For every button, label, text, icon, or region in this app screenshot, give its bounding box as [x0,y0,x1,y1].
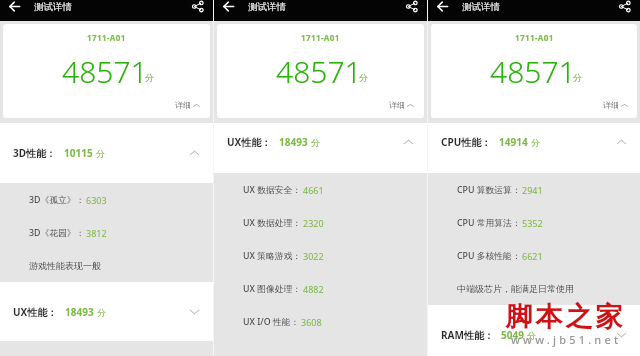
button[interactable]: 3D《花园》： [29,216,213,249]
staticText: 3608 [301,316,322,328]
button[interactable]: 1711-A01 [3,24,210,118]
staticText: 3D《花园》： [29,227,85,239]
button[interactable]: Back [9,1,20,12]
staticText: 详细 [389,100,405,110]
staticText: 1711-A01 [515,32,554,43]
button[interactable]: Back [437,1,448,12]
staticText: 5049 [501,328,524,342]
staticText: 2941 [522,184,543,196]
staticText: CPU 算数运算： [457,184,521,196]
staticText: 游戏性能表现一般 [29,260,101,271]
button[interactable]: UX性能： [0,282,213,341]
staticText: 5352 [522,217,543,229]
staticText: 详细 [603,100,619,110]
button[interactable]: 详细 [175,100,200,110]
staticText: RAM性能： [441,328,494,342]
button[interactable]: 3D《孤立》： [29,183,213,216]
staticText: 分 [573,72,582,83]
staticText: 6303 [86,194,107,206]
staticText: 4882 [303,283,324,295]
staticText: 48571 [490,51,576,92]
button[interactable]: UX性能： [214,123,427,173]
staticText: UX 数据安全： [243,184,302,196]
button[interactable]: Share [406,1,417,12]
button[interactable]: UX 策略游戏： [243,239,427,272]
staticText: UX性能： [13,305,58,319]
staticText: 18493 [65,305,94,319]
staticText: 分 [359,72,368,83]
button[interactable]: Share [192,1,203,12]
staticText: 3D性能： [13,146,57,160]
staticText: 测试详情 [34,1,72,13]
staticText: 测试详情 [248,1,286,13]
button[interactable]: Share [619,1,630,12]
button[interactable]: 详细 [389,100,414,110]
staticText: UX 数据处理： [243,217,302,229]
staticText: CPU 多核性能： [457,250,521,262]
staticText: 14914 [499,135,528,149]
staticText: 中端级芯片，能满足日常使用 [457,283,574,294]
button[interactable]: UX I/O 性能： [243,305,427,338]
staticText: 分 [311,137,320,148]
button[interactable]: CPU 多核性能： [457,239,640,272]
staticText: 分 [531,137,540,148]
staticText: 3812 [86,227,107,239]
button[interactable]: UX 数据处理： [243,206,427,239]
button[interactable]: 详细 [603,100,628,110]
staticText: 1711-A01 [87,32,126,43]
staticText: CPU 常用算法： [457,217,521,229]
staticText: 测试详情 [462,1,500,13]
staticText: 分 [527,330,536,341]
button[interactable]: CPU 算数运算： [457,173,640,206]
staticText: 详细 [175,100,191,110]
staticText: 脚本之家 [504,300,624,334]
staticText: UX 图像处理： [243,283,302,295]
staticText: UX I/O 性能： [243,316,300,328]
button[interactable]: Back [223,1,234,12]
button[interactable]: 3D性能： [0,123,213,183]
staticText: 分 [145,72,154,83]
staticText: UX性能： [227,135,272,149]
button[interactable]: UX 图像处理： [243,272,427,305]
staticText: 分 [96,148,105,159]
button[interactable]: 1711-A01 [217,24,424,118]
button[interactable]: UX 数据安全： [243,173,427,206]
button[interactable]: CPU性能： [428,123,640,173]
staticText: 2320 [303,217,324,229]
staticText: 3D《孤立》： [29,194,85,206]
staticText: 3022 [303,250,324,262]
staticText: www.jb51.net [511,332,622,347]
button[interactable]: 1711-A01 [431,24,637,118]
staticText: 6621 [522,250,543,262]
staticText: 48571 [276,51,362,92]
staticText: 48571 [62,51,148,92]
staticText: 4661 [303,184,324,196]
staticText: 分 [97,307,106,318]
staticText: 18493 [279,135,308,149]
staticText: 10115 [64,146,93,160]
staticText: CPU性能： [441,135,492,149]
button[interactable]: RAM性能： [428,305,640,356]
staticText: UX 策略游戏： [243,250,302,262]
staticText: 1711-A01 [301,32,340,43]
button[interactable]: CPU 常用算法： [457,206,640,239]
